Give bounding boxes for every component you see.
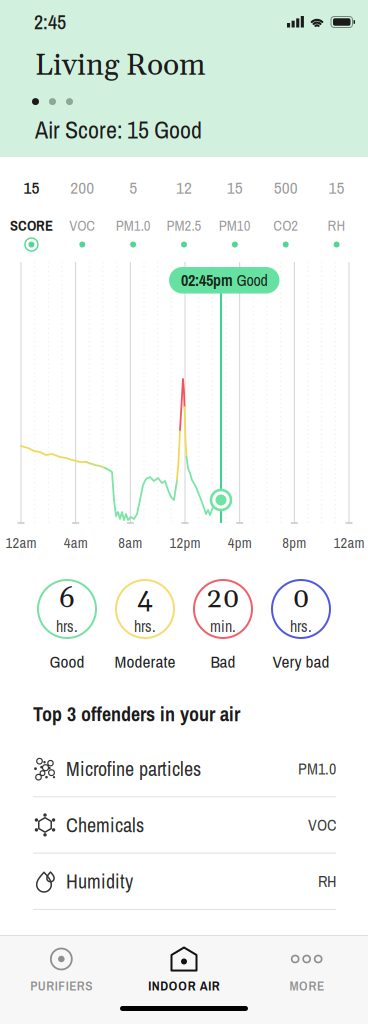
staticText: RH bbox=[328, 216, 346, 235]
staticText: 12am bbox=[333, 533, 364, 552]
staticText: Top 3 offenders in your air bbox=[33, 701, 240, 727]
staticText: 5 bbox=[129, 176, 137, 199]
staticText: 0 bbox=[292, 581, 309, 617]
button[interactable]: Page 3 bbox=[66, 98, 73, 105]
staticText: 2:45 bbox=[34, 9, 66, 35]
staticText: 4 bbox=[137, 581, 153, 617]
staticText: min. bbox=[210, 616, 236, 637]
staticText: 20 bbox=[206, 581, 239, 617]
staticText: RH bbox=[318, 871, 336, 892]
staticText: MORE bbox=[289, 977, 324, 994]
button[interactable]: 500 bbox=[260, 176, 311, 251]
staticText: Moderate bbox=[114, 650, 175, 673]
staticText: 12am bbox=[5, 533, 36, 552]
staticText: 15 bbox=[227, 176, 243, 199]
button[interactable]: 15 bbox=[209, 176, 260, 251]
button[interactable]: Microfine particles bbox=[33, 741, 336, 797]
staticText: 02:45pm bbox=[181, 270, 233, 291]
staticText: Chemicals bbox=[66, 812, 144, 838]
staticText: Good bbox=[236, 270, 267, 291]
staticText: 8am bbox=[118, 533, 142, 552]
button[interactable]: 15 bbox=[311, 176, 362, 251]
staticText: 12pm bbox=[169, 533, 200, 552]
button[interactable]: 02:45pm bbox=[169, 267, 279, 293]
staticText: 12 bbox=[176, 176, 192, 199]
staticText: Microfine particles bbox=[66, 755, 201, 782]
staticText: PM10 bbox=[219, 216, 251, 235]
staticText: 6 bbox=[59, 581, 75, 617]
button[interactable]: 200 bbox=[57, 176, 108, 251]
staticText: hrs. bbox=[134, 616, 156, 637]
button[interactable]: INDOOR AIR bbox=[123, 947, 245, 994]
staticText: hrs. bbox=[56, 616, 78, 637]
staticText: PM1.0 bbox=[298, 758, 336, 779]
staticText: 15 bbox=[329, 176, 345, 199]
staticText: 15 bbox=[23, 176, 39, 199]
button[interactable]: PURIFIERS bbox=[0, 947, 123, 994]
button[interactable]: MORE bbox=[245, 947, 368, 994]
button[interactable]: Page 2 bbox=[49, 98, 56, 105]
staticText: 500 bbox=[274, 176, 298, 199]
staticText: PM1.0 bbox=[116, 216, 151, 235]
staticText: VOC bbox=[308, 814, 336, 835]
staticText: PM2.5 bbox=[166, 216, 201, 235]
staticText: Living Room bbox=[35, 47, 205, 85]
staticText: Very bad bbox=[272, 650, 329, 673]
staticText: Humidity bbox=[66, 868, 133, 894]
staticText: INDOOR AIR bbox=[148, 977, 220, 994]
staticText: SCORE bbox=[10, 216, 53, 235]
staticText: 4pm bbox=[228, 533, 252, 552]
staticText: PURIFIERS bbox=[30, 977, 92, 994]
button[interactable]: 5 bbox=[108, 176, 159, 251]
button[interactable]: Chemicals bbox=[33, 797, 336, 854]
button[interactable]: Humidity bbox=[33, 854, 336, 910]
staticText: VOC bbox=[69, 216, 95, 235]
button[interactable]: Page 1 bbox=[32, 98, 39, 105]
staticText: Bad bbox=[210, 650, 235, 673]
button[interactable]: 15 bbox=[6, 176, 57, 251]
staticText: 200 bbox=[70, 176, 94, 199]
staticText: 8pm bbox=[282, 533, 306, 552]
staticText: CO2 bbox=[273, 216, 298, 235]
staticText: hrs. bbox=[290, 616, 312, 637]
button[interactable]: 12 bbox=[159, 176, 209, 251]
staticText: Good bbox=[49, 650, 84, 673]
staticText: Air Score: 15 Good bbox=[35, 114, 202, 146]
staticText: 4am bbox=[64, 533, 88, 552]
